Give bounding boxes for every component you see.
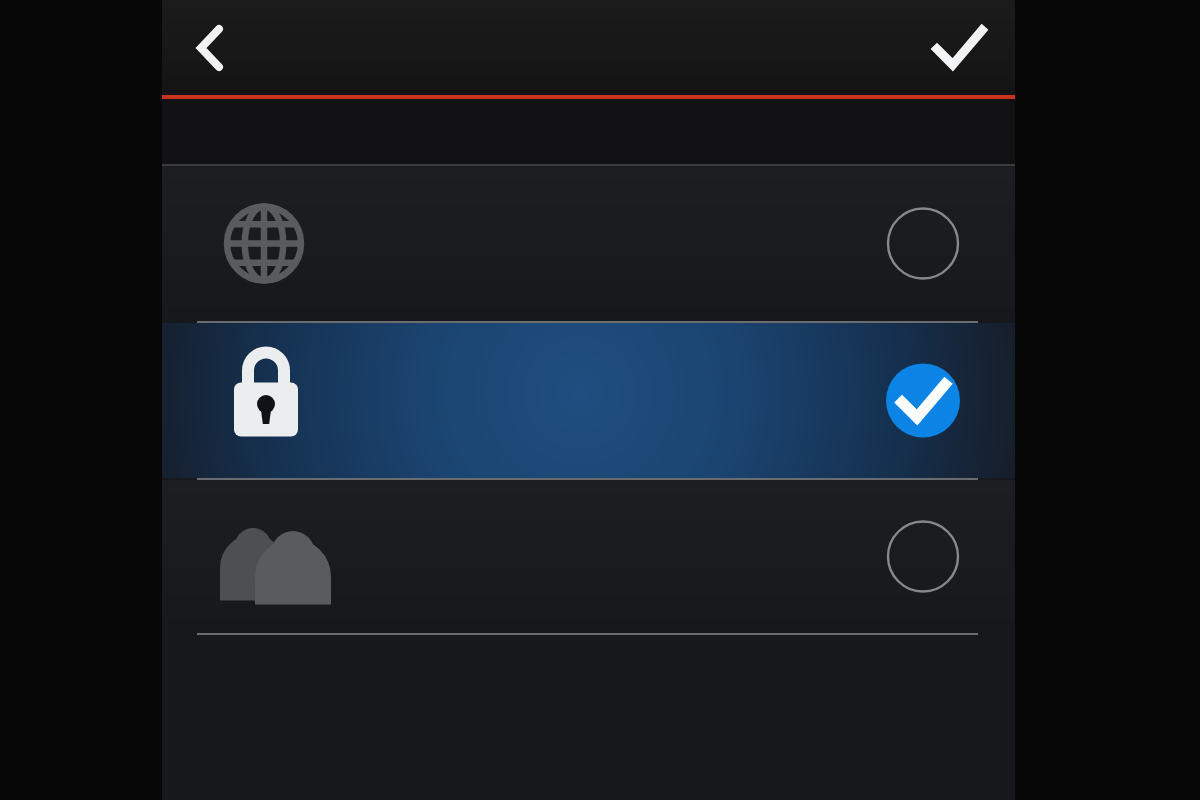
button[interactable]: Back <box>172 10 248 86</box>
button[interactable]: Private <box>162 323 1015 478</box>
button[interactable]: Friends <box>162 480 1015 633</box>
button[interactable]: Confirm <box>921 10 997 86</box>
button[interactable]: Public <box>162 166 1015 321</box>
